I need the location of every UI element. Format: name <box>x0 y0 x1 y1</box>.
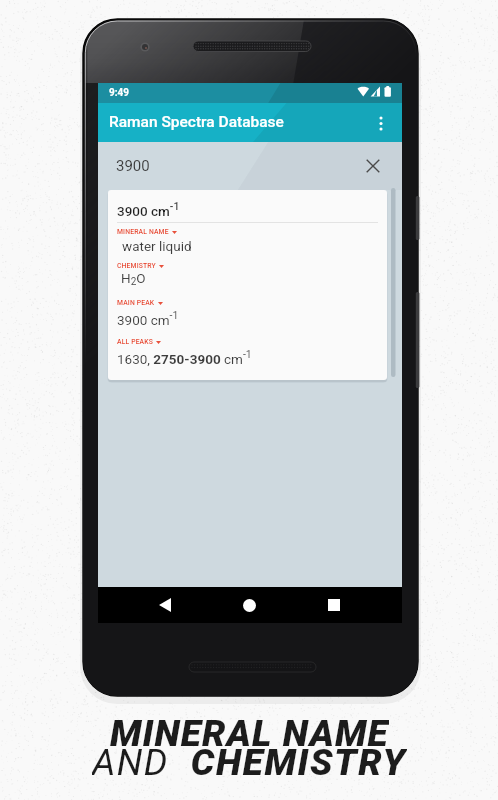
button[interactable]: Back <box>142 591 187 619</box>
button[interactable]: Home <box>227 591 272 619</box>
staticText: 1630, 2750-3900 cm-1 <box>117 348 252 367</box>
staticText: 3900 cm-1 <box>117 200 180 219</box>
button[interactable]: Clear search <box>360 153 386 179</box>
button[interactable]: CHEMISTRY <box>117 260 164 272</box>
staticText: water liquid <box>122 238 192 254</box>
staticText: MINERAL NAME <box>110 712 389 748</box>
staticText: Raman Spectra Database <box>109 113 284 131</box>
staticText: CHEMISTRY <box>117 262 156 270</box>
staticText: MINERAL NAME <box>117 228 169 236</box>
button[interactable]: MAIN PEAK <box>117 297 163 309</box>
button[interactable]: ALL PEAKS <box>117 336 161 348</box>
staticText: 3900 <box>116 157 150 175</box>
staticText: MAIN PEAK <box>117 299 155 307</box>
staticText: ALL PEAKS <box>117 338 153 346</box>
button[interactable]: More options <box>363 105 399 141</box>
staticText: AND CHEMISTRY <box>92 741 407 777</box>
button[interactable]: 3900 cm-1 <box>108 190 387 380</box>
button[interactable]: Recent apps <box>311 591 356 619</box>
staticText: H2O <box>121 270 146 288</box>
staticText: 9:49 <box>109 87 130 99</box>
staticText: 3900 cm-1 <box>117 309 179 328</box>
button[interactable]: MINERAL NAME <box>117 226 177 238</box>
button[interactable]: 3900 <box>98 142 402 190</box>
